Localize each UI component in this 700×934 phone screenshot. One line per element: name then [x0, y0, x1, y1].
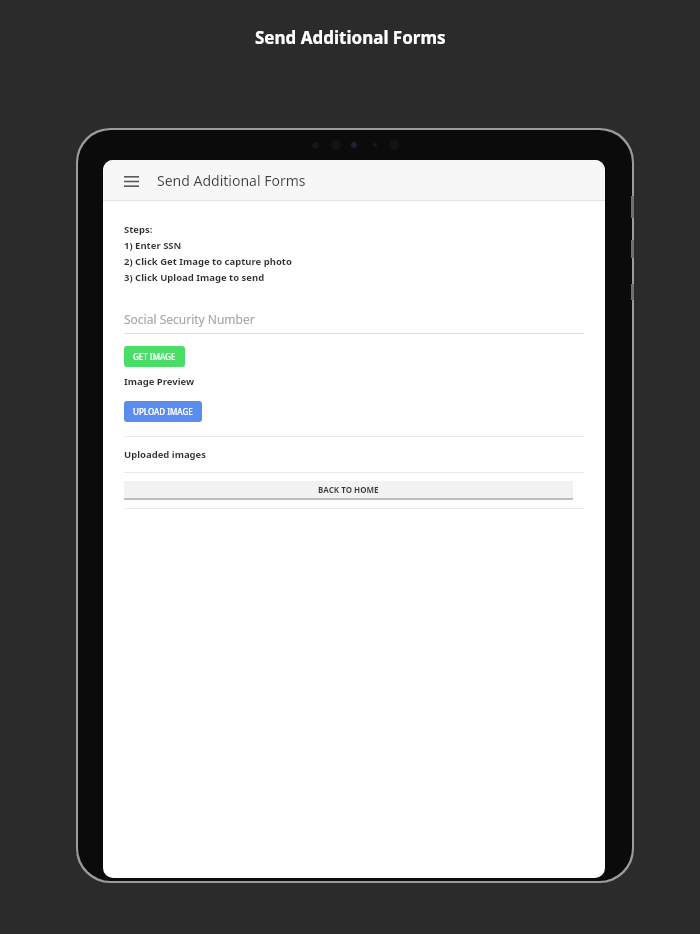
staticText: UPLOAD IMAGE: [133, 406, 193, 417]
staticText: 1) Enter SSN: [124, 239, 182, 252]
button[interactable]: GET IMAGE: [124, 346, 185, 367]
button[interactable]: Social Security Number: [124, 305, 584, 333]
button[interactable]: BACK TO HOME: [124, 481, 573, 500]
staticText: Uploaded images: [124, 448, 207, 461]
staticText: 3) Click Upload Image to send: [124, 271, 265, 284]
staticText: GET IMAGE: [133, 351, 176, 362]
button[interactable]: UPLOAD IMAGE: [124, 401, 202, 422]
button[interactable]: Open navigation menu: [117, 167, 145, 195]
staticText: Send Additional Forms: [157, 171, 306, 190]
staticText: 2) Click Get Image to capture photo: [124, 255, 292, 268]
staticText: BACK TO HOME: [318, 484, 379, 495]
staticText: Steps:: [124, 223, 153, 236]
staticText: Send Additional Forms: [255, 26, 446, 49]
staticText: Image Preview: [124, 375, 195, 388]
staticText: Social Security Number: [124, 311, 255, 327]
